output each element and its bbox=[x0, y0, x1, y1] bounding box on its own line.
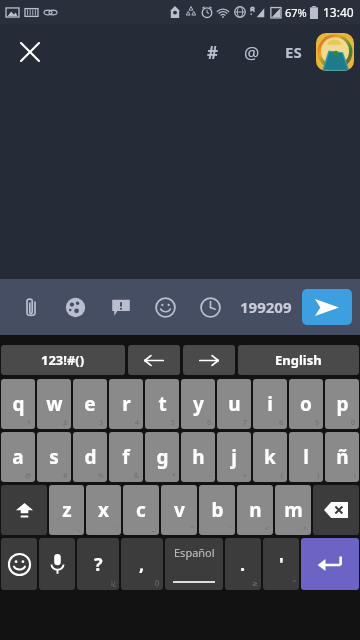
button[interactable]: q bbox=[1, 379, 35, 429]
staticText: 8 bbox=[279, 418, 284, 428]
button[interactable]: e bbox=[73, 379, 107, 429]
button[interactable]: Send bbox=[302, 289, 352, 325]
button[interactable]: i bbox=[253, 379, 287, 429]
button[interactable]: z bbox=[49, 485, 84, 535]
button[interactable]: Close bbox=[8, 30, 52, 74]
staticText: # bbox=[63, 471, 68, 481]
button[interactable]: j bbox=[217, 432, 251, 482]
staticText: 1 bbox=[27, 418, 32, 428]
staticText: q bbox=[12, 391, 25, 417]
staticText: ? bbox=[94, 552, 103, 577]
button[interactable]: Shift bbox=[1, 485, 47, 535]
button[interactable]: Next bbox=[183, 345, 235, 375]
button[interactable]: Voice input bbox=[39, 538, 75, 590]
staticText: 6 bbox=[207, 418, 212, 428]
staticText: _ bbox=[152, 524, 156, 534]
button[interactable]: g bbox=[145, 432, 179, 482]
staticText: v bbox=[174, 497, 185, 523]
staticText: 3 bbox=[99, 418, 104, 428]
button[interactable]: r bbox=[109, 379, 143, 429]
staticText: 2 bbox=[63, 418, 68, 428]
button[interactable]: ñ bbox=[325, 432, 359, 482]
button[interactable]: Emoji bbox=[143, 283, 188, 331]
button[interactable]: s bbox=[37, 432, 71, 482]
button[interactable]: Attach bbox=[8, 283, 53, 331]
button[interactable]: x bbox=[86, 485, 121, 535]
staticText: 7 bbox=[243, 418, 248, 428]
button[interactable]: Language ES bbox=[272, 30, 314, 74]
staticText: . bbox=[240, 552, 246, 577]
staticText: 0 bbox=[351, 418, 356, 428]
button[interactable]: f bbox=[109, 432, 143, 482]
staticText: ) bbox=[317, 471, 320, 481]
staticText: + bbox=[243, 471, 248, 481]
button[interactable]: h bbox=[181, 432, 215, 482]
button[interactable]: . bbox=[225, 538, 261, 590]
button[interactable]: y bbox=[181, 379, 215, 429]
button[interactable]: c bbox=[123, 485, 159, 535]
button[interactable]: Profile bbox=[316, 33, 354, 71]
staticText: h bbox=[192, 444, 205, 470]
staticText: 199209 bbox=[240, 297, 292, 317]
staticText: ñ bbox=[336, 444, 349, 470]
staticText: English bbox=[275, 351, 322, 369]
staticText: n bbox=[249, 497, 262, 523]
button[interactable]: w bbox=[37, 379, 71, 429]
staticText: w bbox=[46, 391, 63, 417]
staticText: , bbox=[139, 552, 145, 577]
button[interactable]: Enter bbox=[301, 538, 359, 590]
staticText: ! bbox=[354, 471, 356, 481]
button[interactable]: u bbox=[217, 379, 251, 429]
staticText: a bbox=[12, 444, 24, 470]
staticText: z bbox=[62, 497, 72, 523]
staticText: c bbox=[136, 497, 146, 523]
staticText: " bbox=[191, 524, 194, 534]
button[interactable]: d bbox=[73, 432, 107, 482]
button[interactable]: Recent bbox=[188, 283, 233, 331]
button[interactable]: English bbox=[238, 345, 359, 375]
staticText: u bbox=[228, 391, 241, 417]
button[interactable]: Emoji bbox=[1, 538, 37, 590]
staticText: % bbox=[98, 471, 104, 481]
staticText: > bbox=[303, 524, 308, 534]
button[interactable]: p bbox=[325, 379, 359, 429]
staticText: o bbox=[300, 391, 312, 417]
staticText: m bbox=[284, 497, 303, 523]
staticText: Español bbox=[174, 545, 215, 560]
staticText: ¡¿ bbox=[111, 578, 116, 588]
button[interactable]: t bbox=[145, 379, 179, 429]
staticText: 67% bbox=[285, 5, 307, 20]
button[interactable]: Previous bbox=[128, 345, 180, 375]
staticText: @ bbox=[244, 41, 260, 64]
staticText: ES bbox=[285, 42, 302, 62]
button[interactable]: n bbox=[237, 485, 273, 535]
button[interactable]: Alert bbox=[98, 283, 143, 331]
staticText: x bbox=[98, 497, 109, 523]
staticText: : bbox=[116, 524, 118, 534]
button[interactable]: Backspace bbox=[313, 485, 359, 535]
button[interactable]: Mention bbox=[232, 30, 272, 74]
button[interactable]: o bbox=[289, 379, 323, 429]
button[interactable]: , bbox=[121, 538, 163, 590]
staticText: () bbox=[155, 578, 160, 588]
button[interactable]: Hashtag bbox=[192, 30, 232, 74]
staticText: b bbox=[211, 497, 224, 523]
button[interactable]: Space bbox=[165, 538, 223, 590]
staticText: g bbox=[156, 444, 169, 470]
button[interactable]: ' bbox=[263, 538, 299, 590]
button[interactable]: 123!#() bbox=[1, 345, 125, 375]
button[interactable]: l bbox=[289, 432, 323, 482]
staticText: f bbox=[122, 444, 130, 470]
staticText: e bbox=[84, 391, 96, 417]
button[interactable]: b bbox=[199, 485, 235, 535]
staticText: s bbox=[49, 444, 59, 470]
staticText: * bbox=[172, 471, 176, 481]
button[interactable]: ? bbox=[77, 538, 119, 590]
staticText: p bbox=[336, 391, 349, 417]
button[interactable]: m bbox=[275, 485, 311, 535]
button[interactable]: v bbox=[161, 485, 197, 535]
button[interactable]: k bbox=[253, 432, 287, 482]
button[interactable]: Globe bbox=[53, 283, 98, 331]
button[interactable]: a bbox=[1, 432, 35, 482]
staticText: t bbox=[158, 391, 167, 417]
